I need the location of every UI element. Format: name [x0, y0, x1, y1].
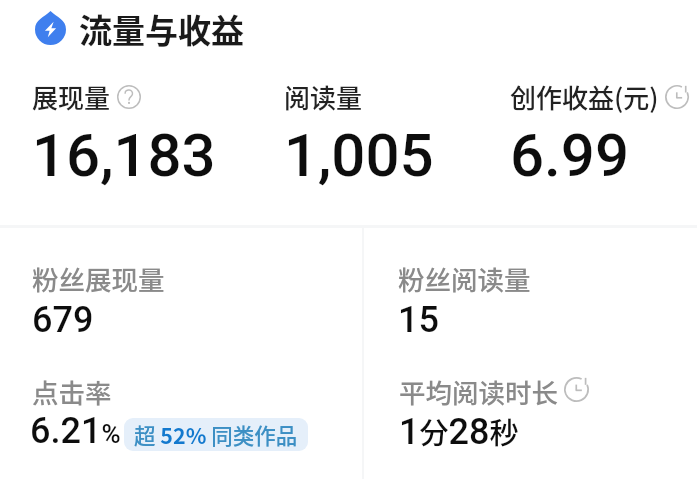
button[interactable]: 阅读量 [284, 78, 434, 190]
staticText: 展现量 [32, 78, 111, 116]
staticText: 平均阅读时长 [399, 372, 558, 410]
button[interactable]: 创作收益(元) [510, 78, 689, 190]
button[interactable]: 展现量 [32, 78, 216, 190]
staticText: 15 [398, 299, 439, 341]
button[interactable]: 平均阅读时长 [399, 372, 589, 452]
staticText: 6.21% [30, 410, 121, 452]
button[interactable]: History [665, 85, 689, 109]
staticText: 创作收益(元) [510, 78, 659, 116]
staticText: 679 [32, 299, 94, 341]
staticText: 点击率 [32, 372, 112, 410]
staticText: 1,005 [284, 120, 434, 190]
staticText: 16,183 [32, 120, 216, 190]
button[interactable]: 超 52% 同类作品 [124, 418, 308, 451]
button[interactable]: Help [117, 85, 141, 109]
button[interactable]: 粉丝展现量 [32, 259, 165, 341]
button[interactable]: 点击率 [30, 372, 308, 452]
staticText: 超 52% 同类作品 [134, 419, 298, 450]
staticText: 1分28秒 [399, 410, 519, 452]
button[interactable]: 流量与收益 [0, 0, 697, 58]
staticText: 6.99 [510, 120, 630, 190]
staticText: 粉丝展现量 [32, 259, 165, 297]
button[interactable]: History [564, 377, 589, 402]
button[interactable]: 粉丝阅读量 [398, 259, 531, 341]
staticText: 粉丝阅读量 [398, 259, 531, 297]
staticText: 阅读量 [284, 78, 363, 116]
staticText: 流量与收益 [79, 5, 244, 53]
